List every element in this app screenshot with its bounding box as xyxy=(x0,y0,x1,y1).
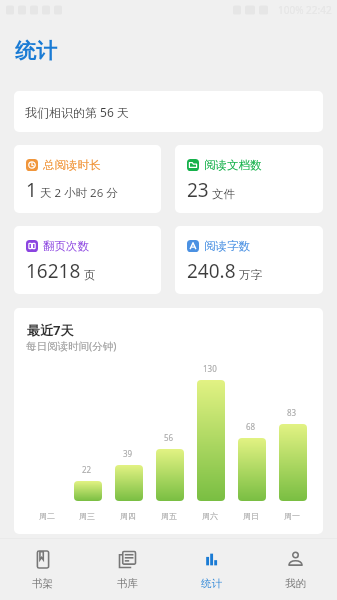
staticText: 1 xyxy=(26,177,37,203)
staticText: 我的 xyxy=(285,577,306,590)
staticText: 翻页次数 xyxy=(43,239,89,253)
staticText: 天 2 小时 26 分 xyxy=(40,185,118,201)
staticText: 周五 xyxy=(161,511,177,521)
button[interactable]: 统计 xyxy=(169,539,253,600)
staticText: 130 xyxy=(203,363,217,374)
staticText: 56 xyxy=(164,432,174,443)
staticText: 书架 xyxy=(32,577,53,590)
staticText: 最近7天 xyxy=(27,321,74,339)
button[interactable]: 阅读文档数 xyxy=(175,145,323,213)
staticText: 22 xyxy=(82,464,92,475)
staticText: 总阅读时长 xyxy=(43,158,101,172)
staticText: 39 xyxy=(123,448,133,459)
staticText: 统计 xyxy=(201,577,222,590)
staticText: 23 xyxy=(187,177,209,203)
button[interactable]: 书架 xyxy=(0,539,85,600)
staticText: 万字 xyxy=(239,268,262,282)
button[interactable]: 我的 xyxy=(253,539,337,600)
staticText: 240.8 xyxy=(187,258,236,284)
staticText: 16218 xyxy=(26,258,81,284)
staticText: 周六 xyxy=(202,511,218,521)
staticText: 周二 xyxy=(39,511,55,521)
staticText: 统计 xyxy=(15,38,57,64)
staticText: 阅读字数 xyxy=(204,239,250,253)
staticText: 83 xyxy=(287,407,297,418)
staticText: 周日 xyxy=(243,511,259,521)
staticText: 书库 xyxy=(117,577,138,590)
button[interactable]: 我们相识的第 56 天 xyxy=(14,91,323,132)
staticText: 阅读文档数 xyxy=(204,158,262,172)
button[interactable]: 书库 xyxy=(85,539,169,600)
staticText: 周三 xyxy=(79,511,95,521)
staticText: 周一 xyxy=(284,511,300,521)
staticText: 页 xyxy=(84,268,96,282)
staticText: 每日阅读时间(分钟) xyxy=(26,339,117,353)
staticText: 周四 xyxy=(120,511,136,521)
staticText: 68 xyxy=(246,421,256,432)
button[interactable]: 总阅读时长 xyxy=(14,145,161,213)
staticText: 100% 22:42 xyxy=(278,3,332,17)
button[interactable]: 阅读字数 xyxy=(175,226,323,294)
button[interactable]: 翻页次数 xyxy=(14,226,161,294)
staticText: 文件 xyxy=(212,187,235,201)
staticText: 我们相识的第 56 天 xyxy=(25,104,129,120)
